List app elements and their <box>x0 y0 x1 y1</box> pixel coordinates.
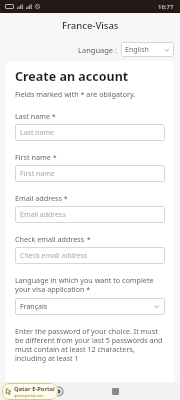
button[interactable]: Select language <box>121 42 174 57</box>
staticText: Français <box>20 302 48 312</box>
button[interactable]: First name <box>15 165 165 182</box>
staticText: Create an account <box>15 68 129 85</box>
staticText: Email address <box>20 210 66 220</box>
staticText: First name <box>15 152 51 162</box>
staticText: * <box>85 234 91 244</box>
button[interactable]: Check email address <box>15 247 165 264</box>
staticText: Check email address <box>20 251 88 261</box>
button[interactable]: Email address <box>15 206 165 223</box>
staticText: * <box>62 193 68 203</box>
staticText: Fields marked with * are obligatory. <box>15 89 136 99</box>
staticText: Check email address <box>15 234 85 244</box>
button[interactable]: Recent apps <box>107 383 123 399</box>
staticText: qatareportal.com <box>14 393 44 398</box>
staticText: First name <box>20 169 55 179</box>
staticText: English <box>125 45 149 55</box>
staticText: * <box>51 152 57 162</box>
staticText: Last name <box>20 128 55 138</box>
staticText: France-Visas <box>62 19 119 32</box>
button[interactable]: Home <box>50 383 66 399</box>
button[interactable]: Select visa application language <box>15 298 165 315</box>
staticText: Email address <box>15 193 62 203</box>
staticText: * <box>50 111 56 121</box>
staticText: Language : <box>78 45 118 55</box>
staticText: Language in which you want to complete y… <box>15 275 165 295</box>
staticText: 16:77 <box>158 3 174 11</box>
staticText: Last name <box>15 111 50 121</box>
staticText: Qatar E-Portal <box>14 385 55 393</box>
button[interactable]: Last name <box>15 124 165 141</box>
staticText: Enter the password of your choice. It mu… <box>15 326 165 364</box>
